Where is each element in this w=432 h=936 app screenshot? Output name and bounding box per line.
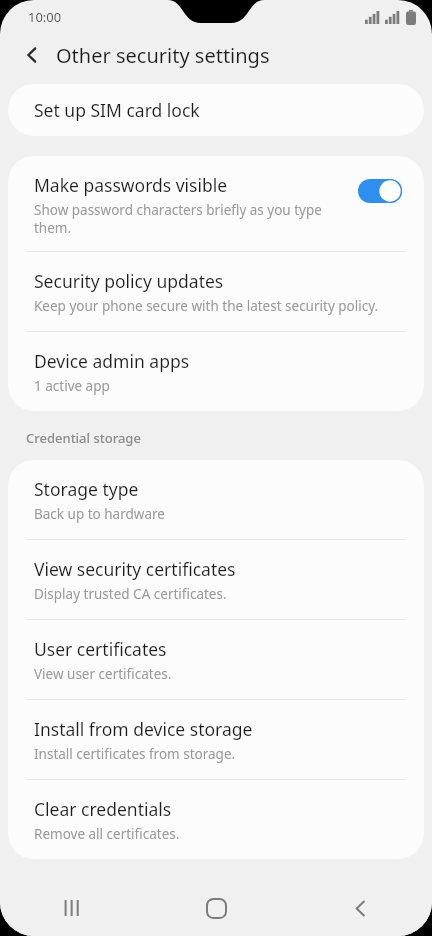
staticText: Credential storage <box>26 429 141 447</box>
staticText: Remove all certificates. <box>34 825 180 843</box>
staticText: View security certificates <box>34 557 236 581</box>
staticText: Back up to hardware <box>34 505 165 523</box>
staticText: Show password characters briefly as you … <box>34 201 322 219</box>
staticText: Security policy updates <box>34 269 224 293</box>
button[interactable]: Make passwords visible <box>8 156 424 251</box>
button[interactable]: View security certificates <box>8 540 424 619</box>
staticText: Set up SIM card lock <box>34 98 200 122</box>
staticText: Install certificates from storage. <box>34 745 236 763</box>
button[interactable]: Home <box>144 880 288 936</box>
button[interactable]: Security policy updates <box>8 252 424 331</box>
staticText: Install from device storage <box>34 717 253 741</box>
button[interactable]: Make passwords visible <box>358 179 402 203</box>
button[interactable]: Set up SIM card lock <box>8 84 424 136</box>
staticText: Clear credentials <box>34 797 172 821</box>
staticText: Keep your phone secure with the latest s… <box>34 297 379 315</box>
button[interactable]: Clear credentials <box>8 780 424 859</box>
staticText: 1 active app <box>34 377 110 395</box>
button[interactable]: User certificates <box>8 620 424 699</box>
button[interactable]: Back <box>288 880 432 936</box>
staticText: User certificates <box>34 637 167 661</box>
staticText: View user certificates. <box>34 665 172 683</box>
button[interactable]: Device admin apps <box>8 332 424 411</box>
staticText: Display trusted CA certificates. <box>34 585 227 603</box>
button[interactable]: Recent apps <box>0 880 144 936</box>
staticText: 10:00 <box>28 8 62 26</box>
button[interactable]: Back <box>12 35 52 75</box>
staticText: Device admin apps <box>34 349 190 373</box>
staticText: Make passwords visible <box>34 173 228 197</box>
staticText: Storage type <box>34 477 139 501</box>
button[interactable]: Storage type <box>8 460 424 539</box>
staticText: them. <box>34 219 72 237</box>
staticText: Other security settings <box>56 42 270 69</box>
button[interactable]: Install from device storage <box>8 700 424 779</box>
